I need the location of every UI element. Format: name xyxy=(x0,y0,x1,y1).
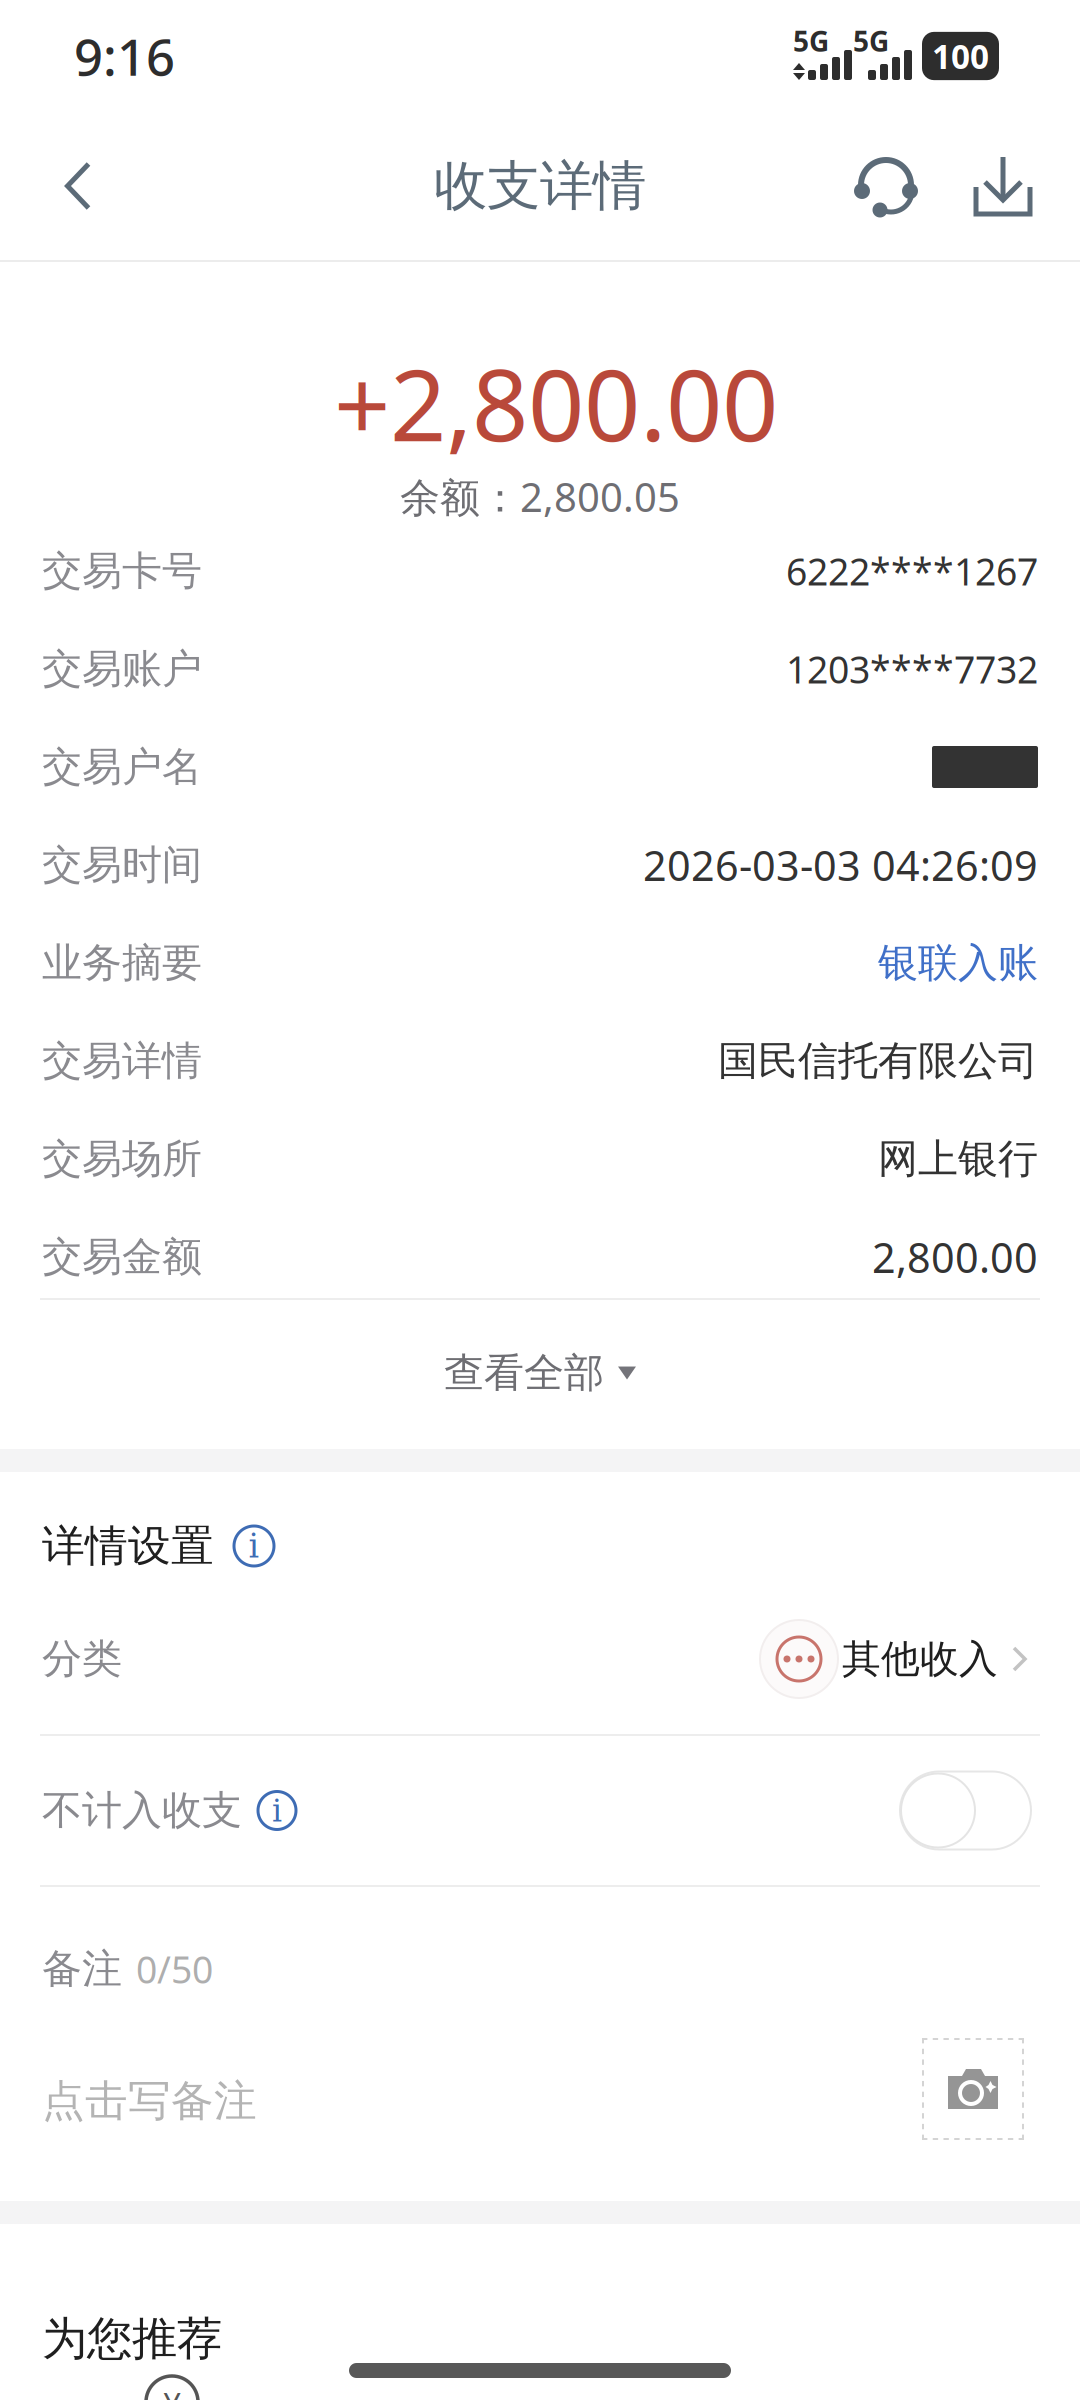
staticText: 0/50 xyxy=(136,1944,213,1994)
button[interactable]: 下载 xyxy=(953,126,1053,246)
button[interactable]: 点击写备注 xyxy=(0,2049,1080,2178)
staticText: 为您推荐 xyxy=(42,2311,222,2367)
staticText: 交易详情 xyxy=(42,1036,202,1085)
staticText: 分类 xyxy=(42,1634,122,1683)
button[interactable]: 查看全部 xyxy=(0,1300,1080,1449)
staticText: 其他收入 xyxy=(842,1635,998,1683)
staticText: 交易户名 xyxy=(42,742,202,791)
staticText: 国民信托有限公司 xyxy=(718,1036,1038,1085)
staticText: 5G xyxy=(793,22,829,60)
staticText: 5G xyxy=(853,22,889,60)
staticText: 备注 xyxy=(42,1944,122,1993)
staticText: 2026-03-03 04:26:09 xyxy=(643,838,1038,892)
staticText: 网上银行 xyxy=(878,1134,1038,1183)
staticText: 交易卡号 xyxy=(42,546,202,595)
staticText: i xyxy=(272,1792,282,1829)
staticText: 余额：2,800.05 xyxy=(400,470,680,523)
staticText: ¥ xyxy=(163,2383,181,2400)
staticText: 2,800.00 xyxy=(872,1230,1038,1284)
staticText: 查看全部 xyxy=(444,1348,604,1397)
staticText: 交易金额 xyxy=(42,1232,202,1281)
button[interactable]: 返回 xyxy=(18,126,138,246)
staticText: 不计入收支 xyxy=(42,1786,242,1835)
staticText: 交易时间 xyxy=(42,840,202,889)
staticText: 点击写备注 xyxy=(42,2075,257,2127)
staticText: 收支详情 xyxy=(434,153,646,219)
staticText: i xyxy=(248,1527,259,1565)
staticText: 9:16 xyxy=(74,22,175,90)
staticText: 100 xyxy=(932,34,989,78)
staticText: 详情设置 xyxy=(42,1520,214,1572)
staticText: 6222****1267 xyxy=(786,546,1038,596)
button[interactable]: 在线客服 xyxy=(819,126,953,246)
staticText: 交易账户 xyxy=(42,644,202,693)
staticText: 业务摘要 xyxy=(42,938,202,987)
button[interactable]: 不计入收支 xyxy=(900,1771,1031,1849)
staticText: 交易场所 xyxy=(42,1134,202,1183)
staticText: 1203****7732 xyxy=(786,644,1038,694)
staticText: +2,800.00 xyxy=(334,337,778,468)
button[interactable]: 分类 xyxy=(0,1620,1080,1715)
staticText: 银联入账 xyxy=(878,938,1038,987)
